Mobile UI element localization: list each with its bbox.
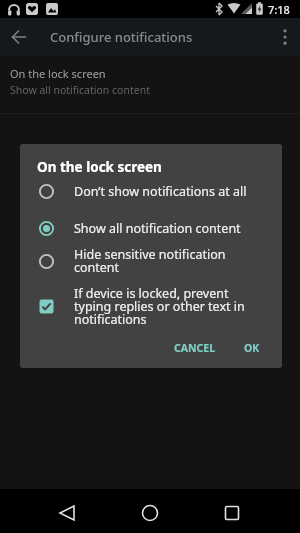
button[interactable]: If device is locked, prevent typing repl… (20, 284, 282, 328)
staticText: Don’t show notifications at all (74, 183, 247, 200)
staticText: On the lock screen (37, 158, 162, 176)
button[interactable]: Hide sensitive notification content (20, 245, 282, 277)
button[interactable]: Show all notification content (20, 213, 282, 243)
button[interactable] (200, 489, 300, 533)
button[interactable]: CANCEL (166, 333, 224, 363)
staticText: 7:18 (268, 2, 290, 17)
button[interactable]: OK (236, 333, 268, 363)
staticText: Configure notifications (50, 28, 193, 46)
button[interactable] (0, 18, 38, 56)
staticText: On the lock screen (10, 66, 106, 81)
button[interactable] (100, 489, 200, 533)
staticText: CANCEL (174, 341, 216, 355)
staticText: Hide sensitive notification content (74, 246, 226, 276)
button[interactable] (0, 489, 100, 533)
button[interactable]: Don’t show notifications at all (20, 176, 282, 206)
staticText: OK (244, 341, 260, 355)
staticText: If device is locked, prevent typing repl… (74, 285, 245, 328)
staticText: Show all notification content (74, 220, 241, 237)
button[interactable] (270, 18, 300, 56)
staticText: Show all notification content (10, 83, 150, 97)
button[interactable]: On the lock screen (0, 56, 300, 97)
